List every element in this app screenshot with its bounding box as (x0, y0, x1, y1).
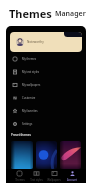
staticText: Text styles (30, 178, 43, 182)
staticText: My wallpapers (22, 83, 41, 87)
button[interactable]: Customize (6, 91, 86, 104)
button[interactable]: My favorites (6, 104, 86, 117)
staticText: Wallpapers (47, 178, 61, 182)
button[interactable]: My themes (6, 52, 86, 65)
button[interactable]: Wallpapers (45, 169, 63, 183)
button[interactable]: My text styles (6, 65, 86, 78)
button[interactable]: Settings (6, 117, 86, 130)
staticText: My themes (22, 57, 36, 61)
staticText: Noteworthy (27, 40, 44, 44)
button[interactable]: Themes (11, 169, 28, 183)
button[interactable] (36, 141, 57, 169)
button[interactable] (11, 141, 33, 169)
button[interactable] (60, 141, 81, 169)
staticText: My favorites (22, 109, 38, 113)
staticText: Themes (9, 6, 52, 21)
button[interactable]: Account (63, 169, 81, 183)
button[interactable]: Noteworthy (10, 32, 82, 52)
button[interactable]: My wallpapers (6, 78, 86, 91)
staticText: Themes (15, 178, 25, 182)
staticText: Preset themes (11, 133, 31, 137)
staticText: Account (67, 178, 77, 182)
staticText: Manager (55, 9, 86, 19)
button[interactable]: Text styles (28, 169, 45, 183)
staticText: Settings (22, 122, 33, 126)
staticText: Customize (22, 96, 36, 100)
staticText: My text styles (22, 70, 40, 74)
